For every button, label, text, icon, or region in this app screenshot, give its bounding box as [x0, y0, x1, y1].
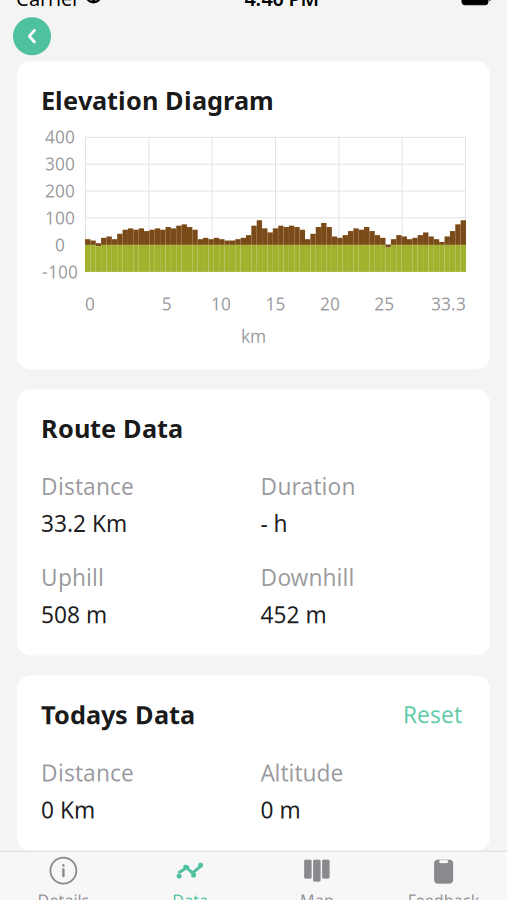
- button[interactable]: Feedback: [380, 852, 507, 900]
- staticText: 400: [45, 125, 75, 148]
- staticText: 33.3: [431, 292, 466, 315]
- button[interactable]: Data: [127, 852, 254, 900]
- staticText: 10: [211, 292, 231, 315]
- staticText: 0: [55, 233, 65, 256]
- button[interactable]: Details: [0, 852, 127, 900]
- button[interactable]: Back: [10, 14, 54, 58]
- staticText: km: [241, 324, 266, 347]
- staticText: Downhill: [260, 562, 354, 592]
- staticText: Reset: [403, 699, 462, 730]
- staticText: Carrier: [16, 0, 80, 12]
- staticText: Details: [37, 890, 89, 900]
- staticText: Distance: [41, 758, 134, 788]
- staticText: 508 m: [41, 599, 107, 629]
- button[interactable]: Reset: [399, 697, 466, 732]
- staticText: 5: [162, 292, 172, 315]
- staticText: 0: [85, 292, 95, 315]
- staticText: 25: [374, 292, 394, 315]
- staticText: Duration: [260, 471, 355, 501]
- staticText: Todays Data: [41, 698, 195, 731]
- staticText: Uphill: [41, 562, 104, 592]
- staticText: 0 m: [260, 795, 300, 825]
- staticText: 200: [45, 179, 75, 202]
- staticText: 33.2 Km: [41, 508, 127, 538]
- staticText: Elevation Diagram: [41, 83, 274, 117]
- staticText: Map: [300, 890, 334, 900]
- staticText: 20: [320, 292, 340, 315]
- staticText: 4:40 PM: [244, 0, 319, 12]
- staticText: Altitude: [260, 758, 343, 788]
- staticText: 452 m: [260, 599, 326, 629]
- staticText: 15: [265, 292, 285, 315]
- staticText: Feedback: [408, 890, 480, 900]
- staticText: Route Data: [41, 411, 183, 445]
- staticText: Distance: [41, 471, 134, 501]
- staticText: 300: [45, 152, 75, 175]
- staticText: Data: [172, 890, 208, 900]
- staticText: 0 Km: [41, 795, 95, 825]
- staticText: - h: [260, 508, 287, 538]
- staticText: 100: [45, 206, 75, 229]
- staticText: -100: [42, 260, 78, 283]
- button[interactable]: Map: [253, 852, 380, 900]
